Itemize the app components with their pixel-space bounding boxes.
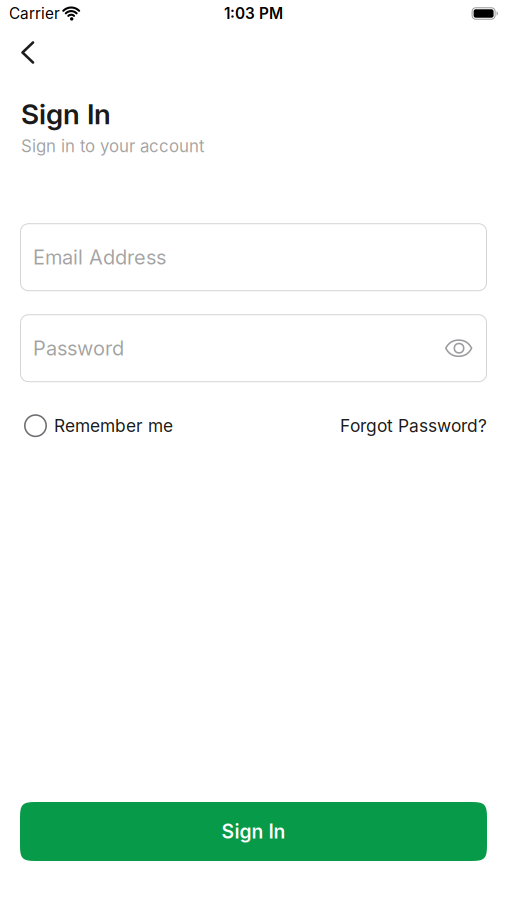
button[interactable]: Sign In: [20, 802, 487, 861]
button[interactable]: Password: [20, 314, 487, 382]
staticText: Sign in to your account: [21, 136, 204, 156]
button[interactable]: Forgot Password?: [340, 415, 487, 436]
staticText: Sign In: [21, 97, 111, 131]
button[interactable]: Remember me: [24, 414, 173, 437]
button[interactable]: Show password: [445, 339, 472, 357]
staticText: Sign In: [221, 820, 285, 843]
staticText: Carrier: [9, 4, 60, 23]
staticText: Remember me: [54, 415, 173, 436]
staticText: Email Address: [33, 245, 166, 269]
button[interactable]: Email Address: [20, 223, 487, 291]
staticText: 1:03 PM: [224, 4, 283, 23]
staticText: Forgot Password?: [340, 415, 487, 436]
staticText: Password: [33, 336, 124, 360]
button[interactable]: Back: [10, 33, 46, 69]
